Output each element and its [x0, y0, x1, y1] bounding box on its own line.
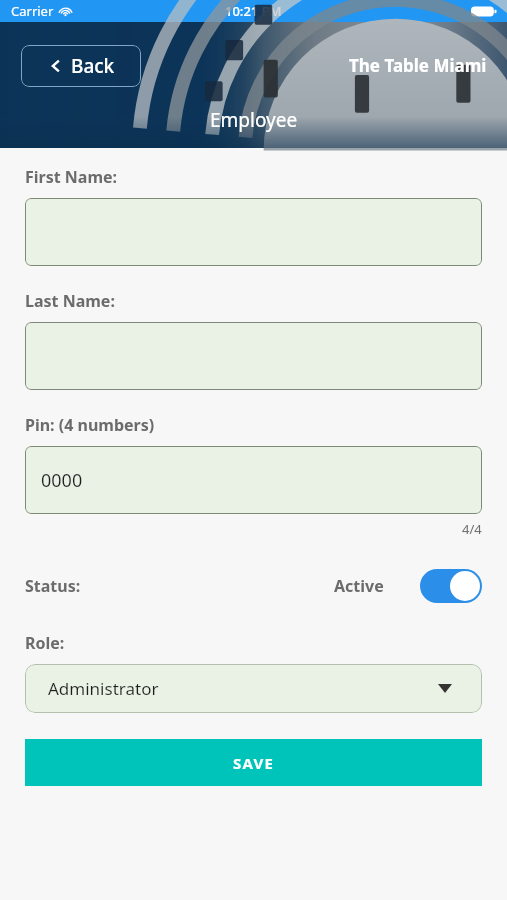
staticText: Last Name: — [25, 290, 115, 312]
button[interactable]: SAVE — [25, 739, 482, 786]
button[interactable]: Status active toggle — [420, 569, 482, 603]
button[interactable]: 0000 — [25, 446, 482, 514]
button[interactable] — [25, 322, 482, 390]
staticText: SAVE — [233, 753, 274, 773]
staticText: Status: — [25, 575, 81, 597]
staticText: Carrier — [11, 2, 54, 20]
staticText: Employee — [210, 107, 298, 133]
staticText: First Name: — [25, 166, 118, 188]
staticText: The Table Miami — [349, 54, 487, 77]
staticText: Back — [71, 53, 115, 79]
button[interactable]: Administrator — [25, 664, 482, 713]
staticText: Administrator — [48, 677, 159, 700]
staticText: 10:21 PM — [225, 2, 282, 20]
button[interactable]: Back — [21, 45, 141, 87]
staticText: Active — [334, 575, 384, 597]
staticText: Pin: (4 numbers) — [25, 414, 155, 436]
staticText: Role: — [25, 632, 65, 654]
staticText: 4/4 — [462, 520, 482, 538]
button[interactable] — [25, 198, 482, 266]
staticText: 0000 — [41, 468, 83, 493]
